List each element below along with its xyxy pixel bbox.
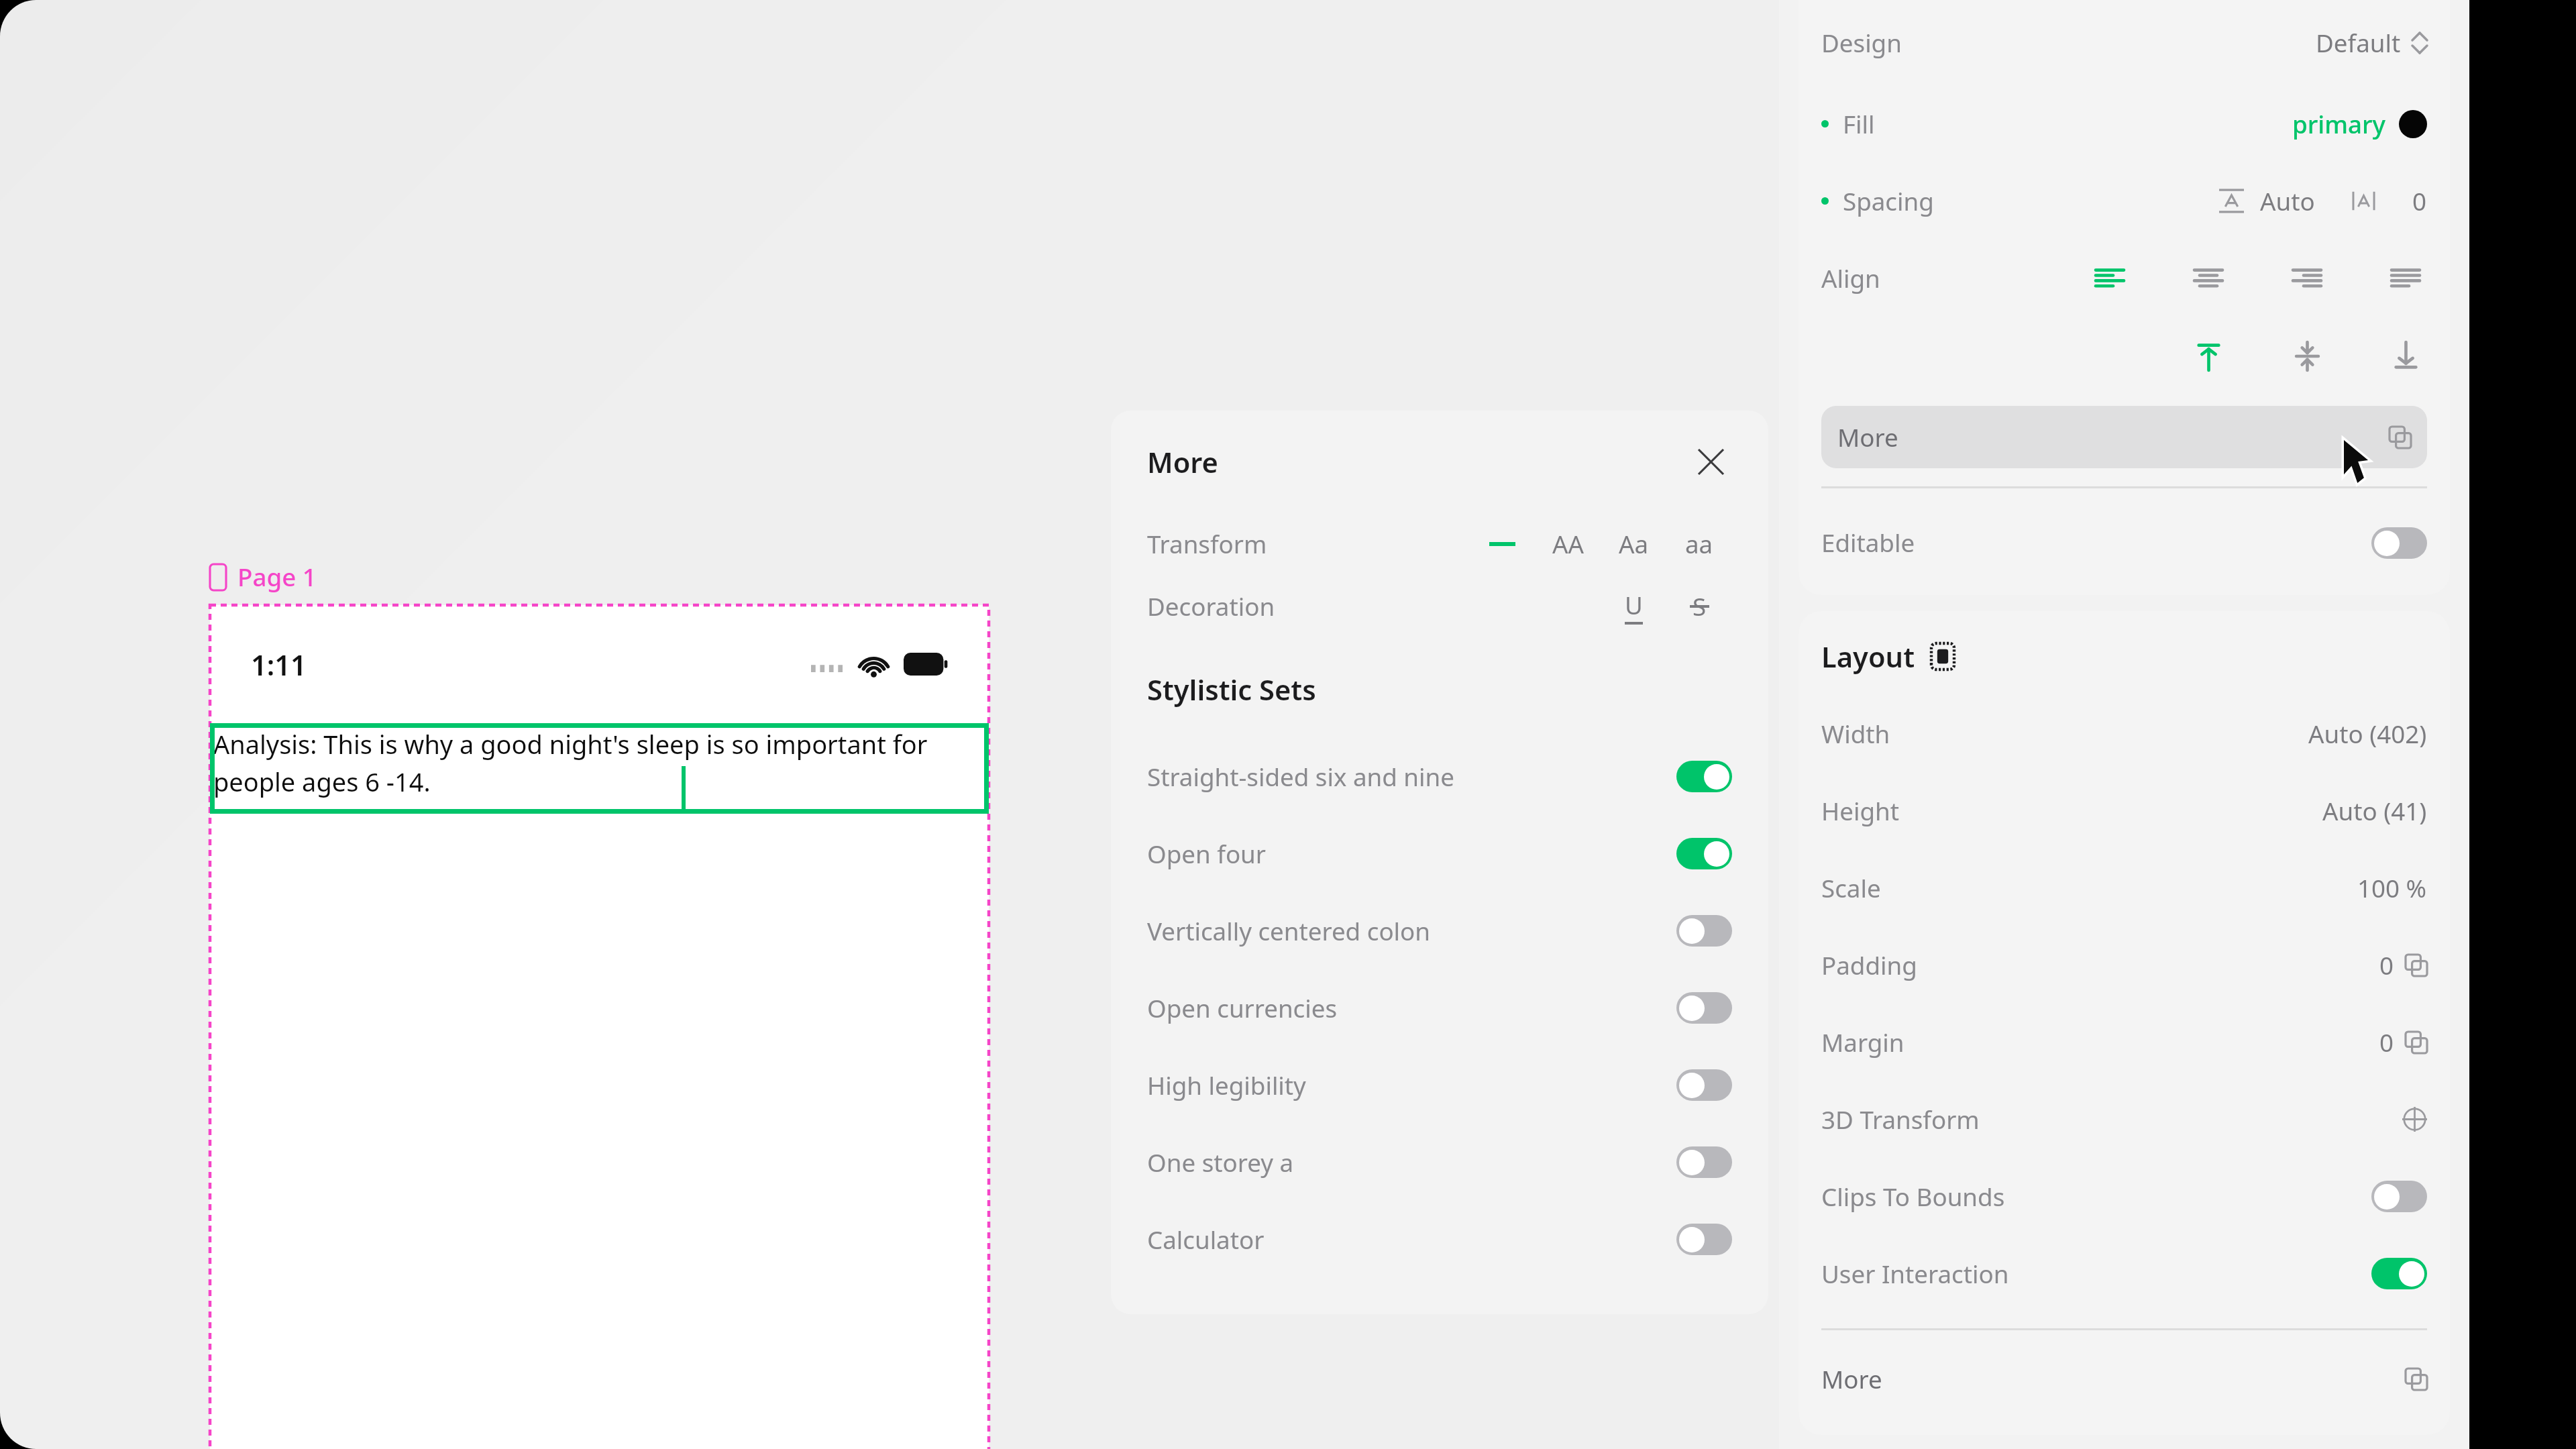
staticText: 3D Transform [1821, 1103, 1980, 1136]
staticText: Vertically centered colon [1147, 914, 1431, 948]
button[interactable]: Letter spacing [2351, 188, 2376, 214]
button[interactable]: On [1676, 761, 1732, 792]
button[interactable]: Align top [2187, 335, 2230, 378]
button[interactable]: Justify [2384, 257, 2427, 300]
staticText: Scale [1821, 871, 1881, 905]
button[interactable]: No transform [1469, 513, 1535, 575]
button[interactable]: Off [2371, 1181, 2427, 1212]
button[interactable]: Editable [1821, 506, 2427, 579]
staticText: Design [1821, 26, 1902, 60]
button[interactable]: Off [2371, 527, 2427, 559]
staticText: More [1821, 1362, 1882, 1396]
staticText: Width [1821, 717, 1890, 751]
button[interactable]: Align center [2187, 257, 2230, 300]
staticText: Default [2316, 26, 2401, 60]
staticText: Auto (402) [2308, 717, 2427, 751]
staticText: Auto (41) [2322, 794, 2427, 828]
staticText: U [1625, 588, 1643, 622]
staticText: S [1693, 590, 1707, 623]
button[interactable]: Open four [1147, 815, 1732, 892]
button[interactable]: Width [1821, 695, 2427, 772]
staticText: Spacing [1843, 184, 1934, 218]
button[interactable]: User Interaction [1821, 1235, 2427, 1312]
button[interactable]: Close [1689, 440, 1732, 483]
staticText: Analysis: This is why a good night's sle… [213, 727, 989, 799]
staticText: Auto [2260, 184, 2315, 218]
button[interactable]: High legibility [1147, 1046, 1732, 1124]
button[interactable]: 3D Transform [1821, 1081, 2427, 1158]
staticText: 0 [2379, 1026, 2394, 1059]
staticText: Transform [1147, 527, 1267, 561]
staticText: Margin [1821, 1026, 1904, 1059]
staticText: Padding [1821, 949, 1917, 982]
staticText: Calculator [1147, 1223, 1265, 1256]
button[interactable]: One storey a [1147, 1124, 1732, 1201]
button[interactable]: Straight-sided six and nine [1147, 738, 1732, 815]
staticText: AA [1552, 527, 1584, 561]
button[interactable]: Align right [2286, 257, 2328, 300]
staticText: Editable [1821, 526, 1915, 559]
button[interactable]: Calculator [1147, 1201, 1732, 1278]
button[interactable]: Align left [2088, 257, 2131, 300]
button[interactable]: Align bottom [2384, 335, 2427, 378]
button[interactable]: Align middle [2286, 335, 2328, 378]
staticText: Open four [1147, 837, 1266, 871]
button[interactable]: Off [1676, 1224, 1732, 1255]
staticText: Decoration [1147, 590, 1275, 623]
staticText: One storey a [1147, 1146, 1294, 1179]
button[interactable]: Aa [1601, 513, 1666, 575]
button[interactable]: Open currencies [1147, 969, 1732, 1046]
button[interactable]: Margin [1821, 1004, 2427, 1081]
staticText: 0 [2379, 949, 2394, 982]
staticText: User Interaction [1821, 1257, 2009, 1291]
button[interactable]: Off [1676, 915, 1732, 947]
staticText: 0 [2412, 184, 2427, 218]
staticText: Straight-sided six and nine [1147, 760, 1454, 794]
staticText: primary [2292, 107, 2385, 141]
staticText: Clips To Bounds [1821, 1180, 2005, 1214]
staticText: More [1837, 421, 1898, 454]
button[interactable]: Off [1676, 1069, 1732, 1101]
staticText: Open currencies [1147, 991, 1338, 1025]
button[interactable]: Line height [2219, 188, 2244, 214]
staticText: Stylistic Sets [1147, 670, 1316, 708]
staticText: Aa [1619, 527, 1649, 561]
button[interactable]: More [1821, 1346, 2427, 1412]
button[interactable]: Design [1821, 0, 2427, 85]
button[interactable]: On [1676, 838, 1732, 869]
button[interactable]: AA [1535, 513, 1601, 575]
staticText: More [1147, 443, 1218, 481]
button[interactable]: Underline [1601, 575, 1666, 637]
button[interactable]: More [1821, 406, 2427, 468]
button[interactable]: Off [1676, 1146, 1732, 1178]
button[interactable]: Scale [1821, 849, 2427, 926]
staticText: 1:11 [251, 645, 307, 684]
button[interactable]: Clips To Bounds [1821, 1158, 2427, 1235]
button[interactable]: aa [1666, 513, 1732, 575]
staticText: Align [1821, 262, 1880, 295]
button[interactable]: Fill [1821, 85, 2427, 162]
button[interactable]: Height [1821, 772, 2427, 849]
staticText: Page 1 [237, 560, 317, 594]
button[interactable]: Vertically centered colon [1147, 892, 1732, 969]
staticText: aa [1685, 527, 1713, 561]
button[interactable]: On [2371, 1258, 2427, 1289]
staticText: Height [1821, 794, 1899, 828]
button[interactable]: Strikethrough [1666, 575, 1732, 637]
staticText: Fill [1843, 107, 1875, 141]
button[interactable]: Padding [1821, 926, 2427, 1004]
staticText: 100 % [2357, 871, 2427, 905]
staticText: High legibility [1147, 1069, 1306, 1102]
button[interactable]: Off [1676, 992, 1732, 1024]
staticText: Layout [1821, 637, 1915, 676]
